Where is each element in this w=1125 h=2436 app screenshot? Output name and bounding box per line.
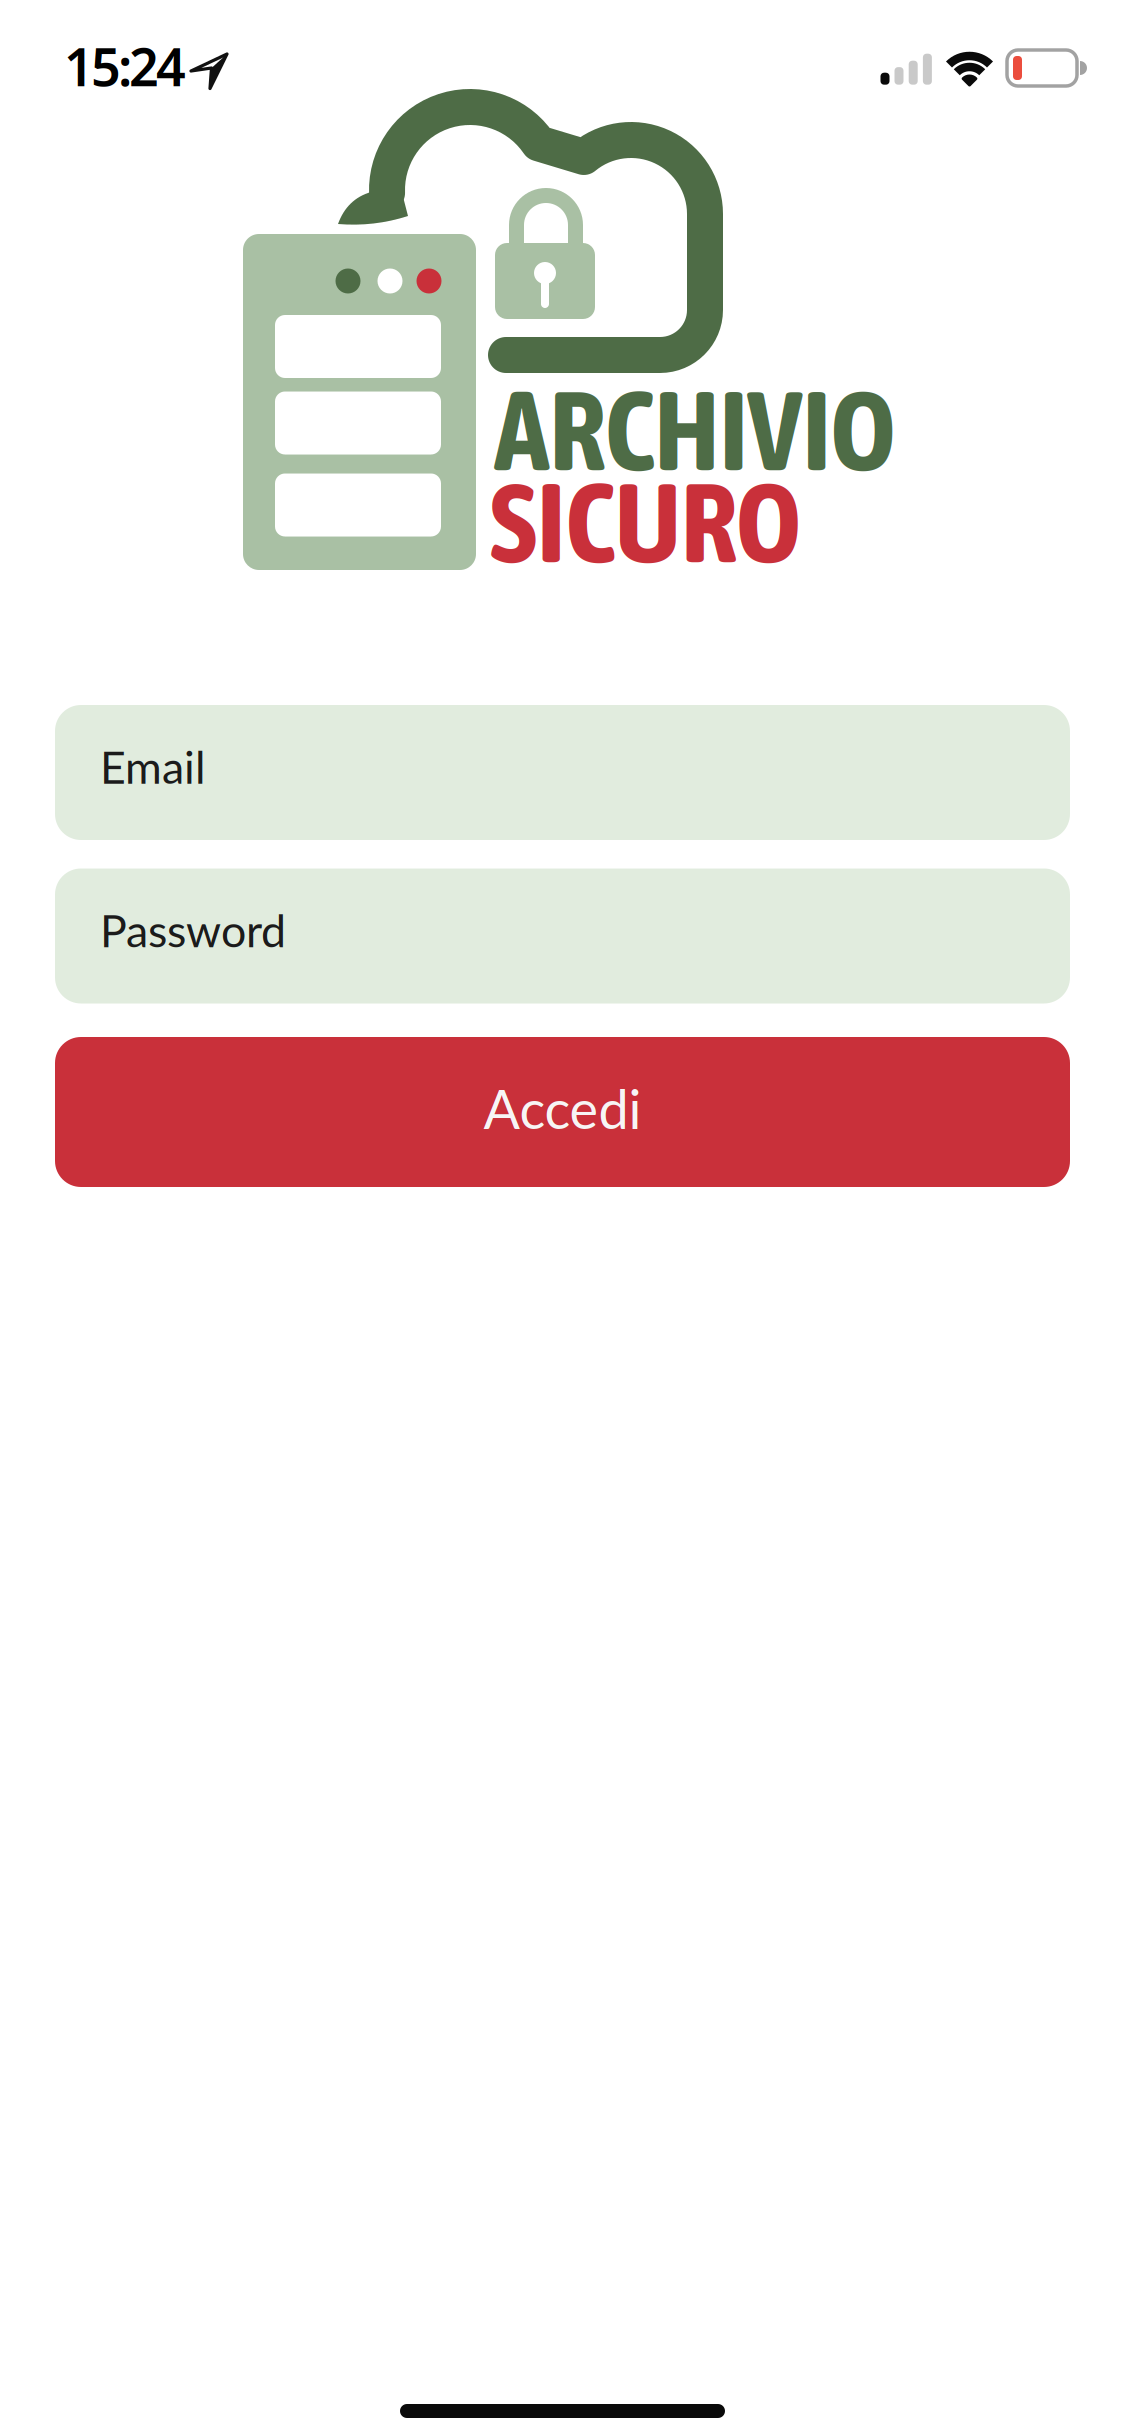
staticText: Password <box>100 903 286 957</box>
staticText: ARCHIVIO <box>494 366 895 494</box>
staticText: Accedi <box>483 1076 641 1140</box>
button[interactable]: Email <box>55 705 1070 840</box>
staticText: Email <box>100 740 206 793</box>
button[interactable]: Accedi <box>55 1037 1070 1187</box>
button[interactable]: Password <box>55 868 1070 1003</box>
staticText: SICURO <box>490 458 801 586</box>
staticText: 15:24 <box>64 31 186 101</box>
